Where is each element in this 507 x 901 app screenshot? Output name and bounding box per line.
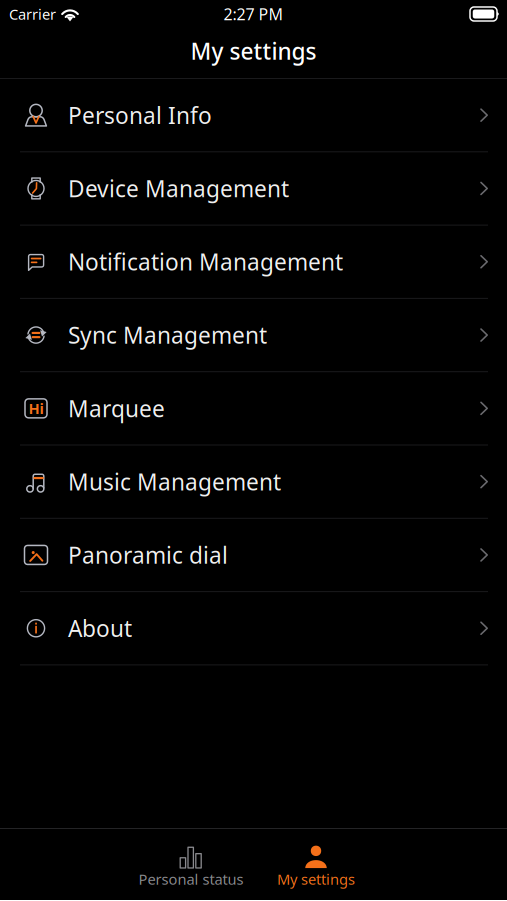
staticText: Panoramic dial (68, 540, 228, 570)
button[interactable]: Music Management (0, 445, 507, 519)
button[interactable]: Panoramic dial (0, 519, 507, 592)
staticText: Sync Management (68, 320, 267, 350)
staticText: Personal Info (68, 100, 212, 130)
button[interactable]: Device Management (0, 152, 507, 226)
staticText: 2:27 PM (223, 3, 283, 25)
staticText: Music Management (68, 467, 281, 497)
button[interactable]: My settings (253, 827, 378, 901)
button[interactable]: Hi (0, 372, 507, 445)
button[interactable]: Notification Management (0, 226, 507, 299)
staticText: Personal status (138, 869, 243, 889)
staticText: Carrier (9, 4, 56, 24)
staticText: My settings (190, 36, 316, 66)
button[interactable]: Personal status (128, 827, 253, 901)
staticText: Notification Management (68, 247, 343, 277)
staticText: My settings (277, 869, 355, 889)
button[interactable]: Personal Info (0, 79, 507, 152)
staticText: About (68, 613, 132, 643)
button[interactable]: Sync Management (0, 299, 507, 372)
staticText: Hi (28, 399, 43, 418)
button[interactable]: About (0, 592, 507, 665)
staticText: Device Management (68, 173, 289, 203)
staticText: Marquee (68, 393, 165, 423)
